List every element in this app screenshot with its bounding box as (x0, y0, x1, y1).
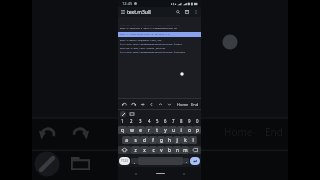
button[interactable]: 5 (153, 117, 161, 125)
button[interactable]: s (131, 136, 140, 144)
staticText: r (148, 127, 150, 133)
button[interactable]: i (177, 126, 185, 134)
button[interactable]: l (189, 136, 197, 144)
staticText: g (160, 137, 163, 143)
button[interactable]: Left (147, 99, 156, 109)
staticText: , (134, 159, 135, 164)
staticText: #EXT-X-MEDIA-SEQUENCE:1368,729 (120, 39, 168, 42)
button[interactable]: 4 (145, 117, 153, 125)
button[interactable]: Navigation menu (118, 7, 127, 17)
button[interactable]: Home (153, 167, 167, 180)
button[interactable]: m (181, 146, 189, 154)
staticText: 12:45 (122, 1, 133, 6)
staticText: 8 (180, 118, 183, 124)
button[interactable]: Save (182, 7, 191, 17)
staticText: #EXTM3U #EXT-X-VERSION:3 #EXT-X-MEDIA-SE… (120, 24, 203, 27)
staticText: 6 (164, 118, 167, 124)
button[interactable]: Recents (179, 169, 188, 178)
staticText: e (139, 127, 142, 133)
button[interactable]: Down (165, 99, 174, 109)
button[interactable]: b (165, 146, 173, 154)
staticText: o (188, 127, 191, 133)
button[interactable]: Backspace (189, 146, 201, 154)
staticText: 7 (172, 118, 175, 124)
button[interactable]: Clipboard (127, 110, 136, 117)
staticText: #EXT-X-TARGETDURATION:10 #EXTINF:9.0 (120, 33, 180, 36)
staticText: b (168, 147, 171, 153)
button[interactable]: Redo (129, 99, 138, 109)
button[interactable]: Edit mode (118, 110, 127, 117)
button[interactable]: Back (131, 169, 140, 178)
button[interactable]: v (157, 146, 165, 154)
button[interactable]: o (185, 126, 193, 134)
button[interactable]: e (136, 126, 145, 134)
button[interactable]: t (153, 126, 161, 134)
staticText: #EXT-X-VERSION:3 #EXT-X-TARGETDURATION:1… (120, 27, 183, 30)
button[interactable]: Search (173, 7, 182, 17)
staticText: 1 (121, 118, 124, 124)
staticText: z (134, 147, 137, 153)
staticText: w (130, 127, 134, 133)
staticText: a (125, 137, 128, 143)
staticText: 5 (156, 118, 159, 124)
button[interactable]: , (131, 158, 138, 164)
button[interactable]: j (173, 136, 181, 144)
staticText: c (152, 147, 155, 153)
button[interactable]: h (165, 136, 173, 144)
button[interactable]: 0 (193, 117, 201, 125)
button[interactable]: f (149, 136, 157, 144)
staticText: #EXTINF:9.009,1368.729044,#EXTINF (120, 47, 171, 50)
button[interactable]: 2 (127, 117, 136, 125)
staticText: End (265, 125, 283, 139)
button[interactable]: 6 (161, 117, 169, 125)
button[interactable]: 8 (177, 117, 185, 125)
staticText: p (196, 127, 199, 133)
button[interactable]: Tab (138, 99, 147, 109)
button[interactable]: Up (156, 99, 165, 109)
button[interactable]: g (157, 136, 165, 144)
button[interactable]: u (169, 126, 177, 134)
button[interactable]: y (161, 126, 169, 134)
button[interactable]: d (140, 136, 149, 144)
button[interactable]: r (145, 126, 153, 134)
button[interactable]: 3 (136, 117, 145, 125)
staticText: i (180, 127, 182, 133)
staticText: s (134, 137, 137, 143)
button[interactable]: More options (191, 7, 200, 17)
button[interactable]: Shift (118, 146, 131, 154)
button[interactable]: p (193, 126, 201, 134)
button[interactable]: Enter (190, 157, 200, 165)
staticText: j (176, 137, 178, 143)
staticText: 9 (188, 118, 191, 124)
button[interactable]: c (149, 146, 157, 154)
button[interactable]: 7 (169, 117, 177, 125)
staticText: 0 (196, 118, 199, 124)
staticText: ts/1/sec/1369/789ad09ab9539822787572e9.t… (120, 51, 203, 54)
staticText: . (186, 159, 187, 164)
staticText: h (168, 137, 171, 143)
staticText: End (191, 102, 199, 107)
staticText: ts/1/sec/1368/789ad09ab9539822787572e9.t… (120, 43, 203, 46)
staticText: q (121, 127, 124, 133)
button[interactable]: End (191, 99, 199, 109)
button[interactable]: a (122, 136, 131, 144)
staticText: n (176, 147, 179, 153)
staticText: v (160, 147, 163, 153)
staticText: m (183, 147, 188, 153)
button[interactable]: x (140, 146, 149, 154)
button[interactable]: 1 (118, 117, 127, 125)
staticText: 4 (148, 118, 151, 124)
button[interactable]: Undo (120, 99, 129, 109)
button[interactable]: . (183, 158, 189, 164)
staticText: x (143, 147, 146, 153)
staticText: d (143, 137, 146, 143)
button[interactable]: Home (177, 99, 189, 109)
button[interactable]: w (127, 126, 136, 134)
button[interactable]: k (181, 136, 189, 144)
button[interactable]: n (173, 146, 181, 154)
button[interactable]: z (131, 146, 140, 154)
button[interactable]: ?123 (119, 157, 130, 165)
button[interactable]: q (118, 126, 127, 134)
button[interactable]: 9 (185, 117, 193, 125)
